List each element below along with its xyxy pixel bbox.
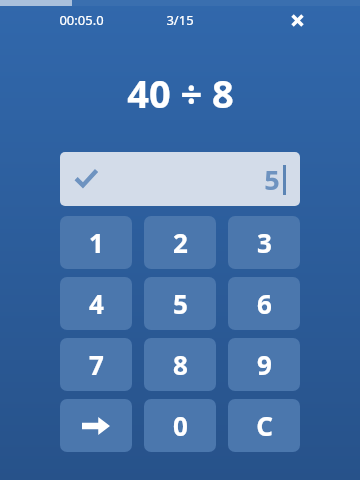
staticText: C xyxy=(256,408,273,443)
button[interactable]: C xyxy=(228,399,300,452)
staticText: 9 xyxy=(257,347,272,382)
staticText: 1 xyxy=(89,225,104,260)
button[interactable]: 1 xyxy=(60,216,132,269)
staticText: 0 xyxy=(173,408,188,443)
button[interactable]: Submit xyxy=(60,399,132,452)
staticText: 6 xyxy=(257,286,272,321)
button[interactable]: 8 xyxy=(144,338,216,391)
staticText: 8 xyxy=(173,347,188,382)
staticText: 3 xyxy=(257,225,272,260)
button[interactable]: Close xyxy=(285,8,309,32)
button[interactable]: 6 xyxy=(228,277,300,330)
staticText: 3/15 xyxy=(166,11,194,29)
button[interactable]: 7 xyxy=(60,338,132,391)
staticText: 4 xyxy=(89,286,104,321)
button[interactable]: 5 xyxy=(144,277,216,330)
staticText: 5 xyxy=(264,161,280,198)
staticText: 40 ÷ 8 xyxy=(127,67,234,119)
staticText: 5 xyxy=(173,286,188,321)
button[interactable]: 0 xyxy=(144,399,216,452)
staticText: 7 xyxy=(89,347,104,382)
button[interactable]: 5 xyxy=(60,152,300,206)
staticText: 00:05.0 xyxy=(59,11,104,29)
button[interactable]: 4 xyxy=(60,277,132,330)
staticText: 2 xyxy=(173,225,188,260)
button[interactable]: 3 xyxy=(228,216,300,269)
button[interactable]: 2 xyxy=(144,216,216,269)
button[interactable]: 9 xyxy=(228,338,300,391)
